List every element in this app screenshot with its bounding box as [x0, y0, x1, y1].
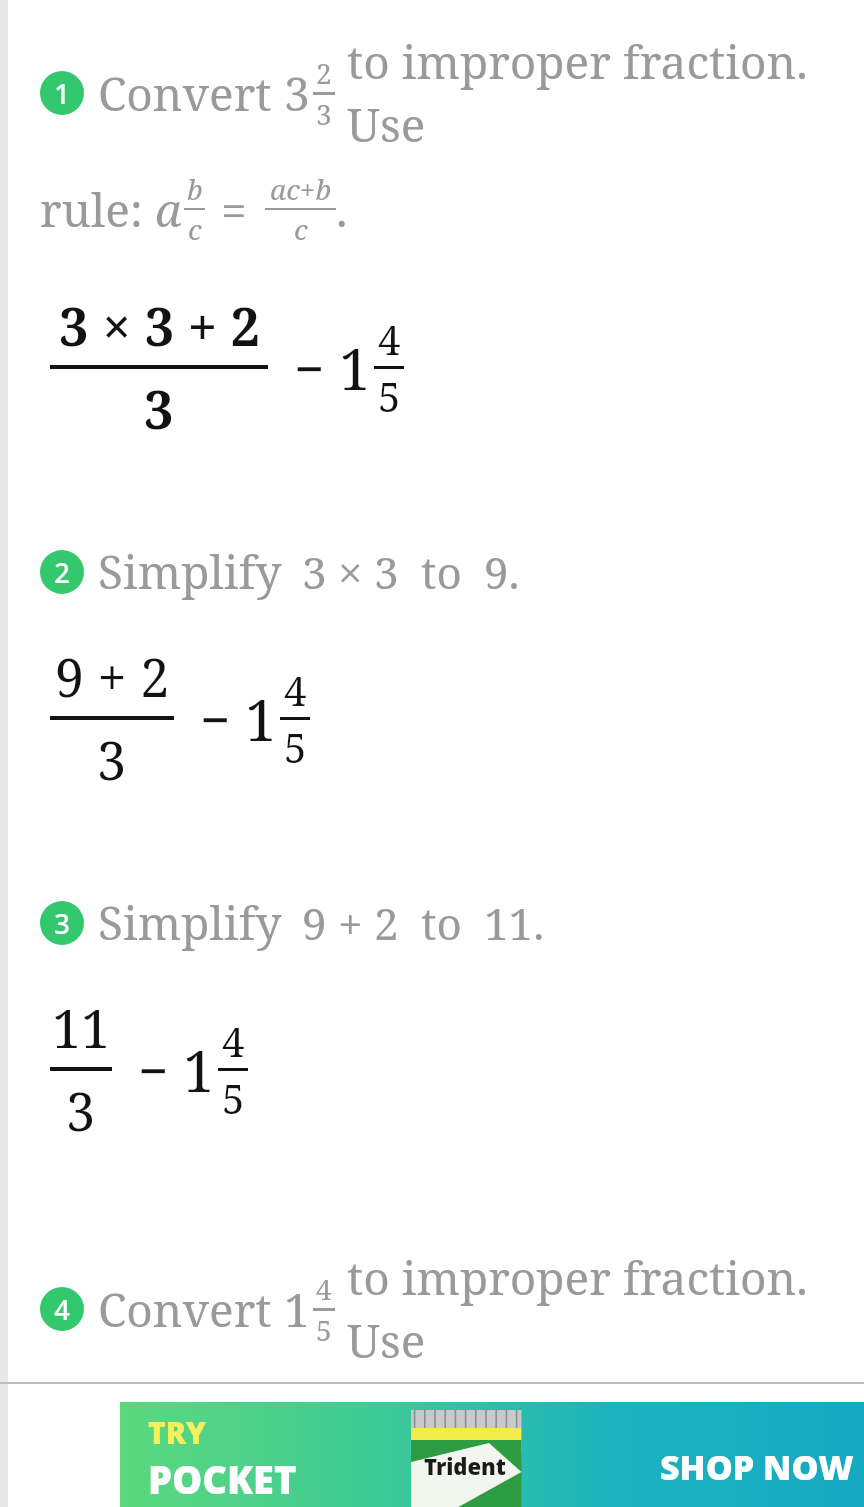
staticText: 11: [52, 992, 111, 1063]
staticText: 3: [316, 95, 332, 133]
staticText: Convert: [98, 1278, 272, 1341]
staticText: 9 + 2: [55, 641, 170, 712]
staticText: TRY: [148, 1412, 206, 1453]
staticText: SHOP NOW: [660, 1444, 854, 1490]
staticText: ac+b: [270, 170, 332, 208]
staticText: 11.: [484, 893, 545, 953]
staticText: 3 × 3: [302, 542, 399, 602]
staticText: to improper fraction. Use: [347, 30, 864, 156]
staticText: 5: [284, 720, 307, 774]
staticText: 9.: [484, 542, 520, 602]
button[interactable]: 3: [40, 891, 545, 954]
staticText: 4: [54, 1291, 70, 1328]
button[interactable]: Trident Pocket Pack advertisement, Shop …: [120, 1402, 864, 1507]
staticText: c: [188, 210, 202, 248]
staticText: Simplify: [98, 891, 282, 954]
staticText: 9 + 2: [302, 893, 399, 953]
staticText: 3: [284, 62, 310, 125]
button[interactable]: 2: [40, 540, 520, 603]
staticText: 1: [54, 75, 70, 112]
staticText: 1: [183, 1032, 215, 1108]
staticText: 3: [54, 905, 70, 942]
staticText: 3: [97, 724, 127, 795]
staticText: Trident: [424, 1451, 506, 1481]
staticText: b: [187, 170, 203, 208]
staticText: 4: [378, 312, 401, 366]
staticText: 2: [54, 554, 70, 591]
staticText: 1: [245, 681, 277, 757]
staticText: 3: [144, 373, 174, 444]
staticText: −: [138, 1034, 169, 1105]
staticText: 1: [339, 330, 371, 406]
staticText: 5: [222, 1071, 245, 1125]
staticText: a: [155, 178, 182, 241]
staticText: 5: [316, 1311, 332, 1349]
staticText: =: [221, 178, 247, 241]
staticText: 4: [222, 1014, 245, 1068]
staticText: 5: [378, 369, 401, 423]
staticText: Convert: [98, 62, 272, 125]
button[interactable]: 4: [40, 1246, 864, 1372]
button[interactable]: 1: [40, 30, 864, 156]
staticText: 4: [284, 663, 307, 717]
staticText: PACK: [148, 1505, 248, 1507]
staticText: rule:: [40, 178, 143, 241]
staticText: 4: [316, 1270, 332, 1308]
staticText: −: [294, 332, 325, 403]
staticText: 3 × 3 + 2: [59, 290, 260, 361]
staticText: to: [421, 893, 462, 953]
staticText: to: [421, 542, 462, 602]
staticText: 2: [316, 54, 332, 92]
staticText: 3: [66, 1075, 96, 1146]
staticText: c: [294, 210, 308, 248]
staticText: .: [336, 178, 348, 241]
staticText: POCKET: [148, 1453, 297, 1505]
staticText: to improper fraction. Use: [347, 1246, 864, 1372]
staticText: −: [200, 683, 231, 754]
staticText: 1: [284, 1278, 310, 1341]
staticText: Simplify: [98, 540, 282, 603]
